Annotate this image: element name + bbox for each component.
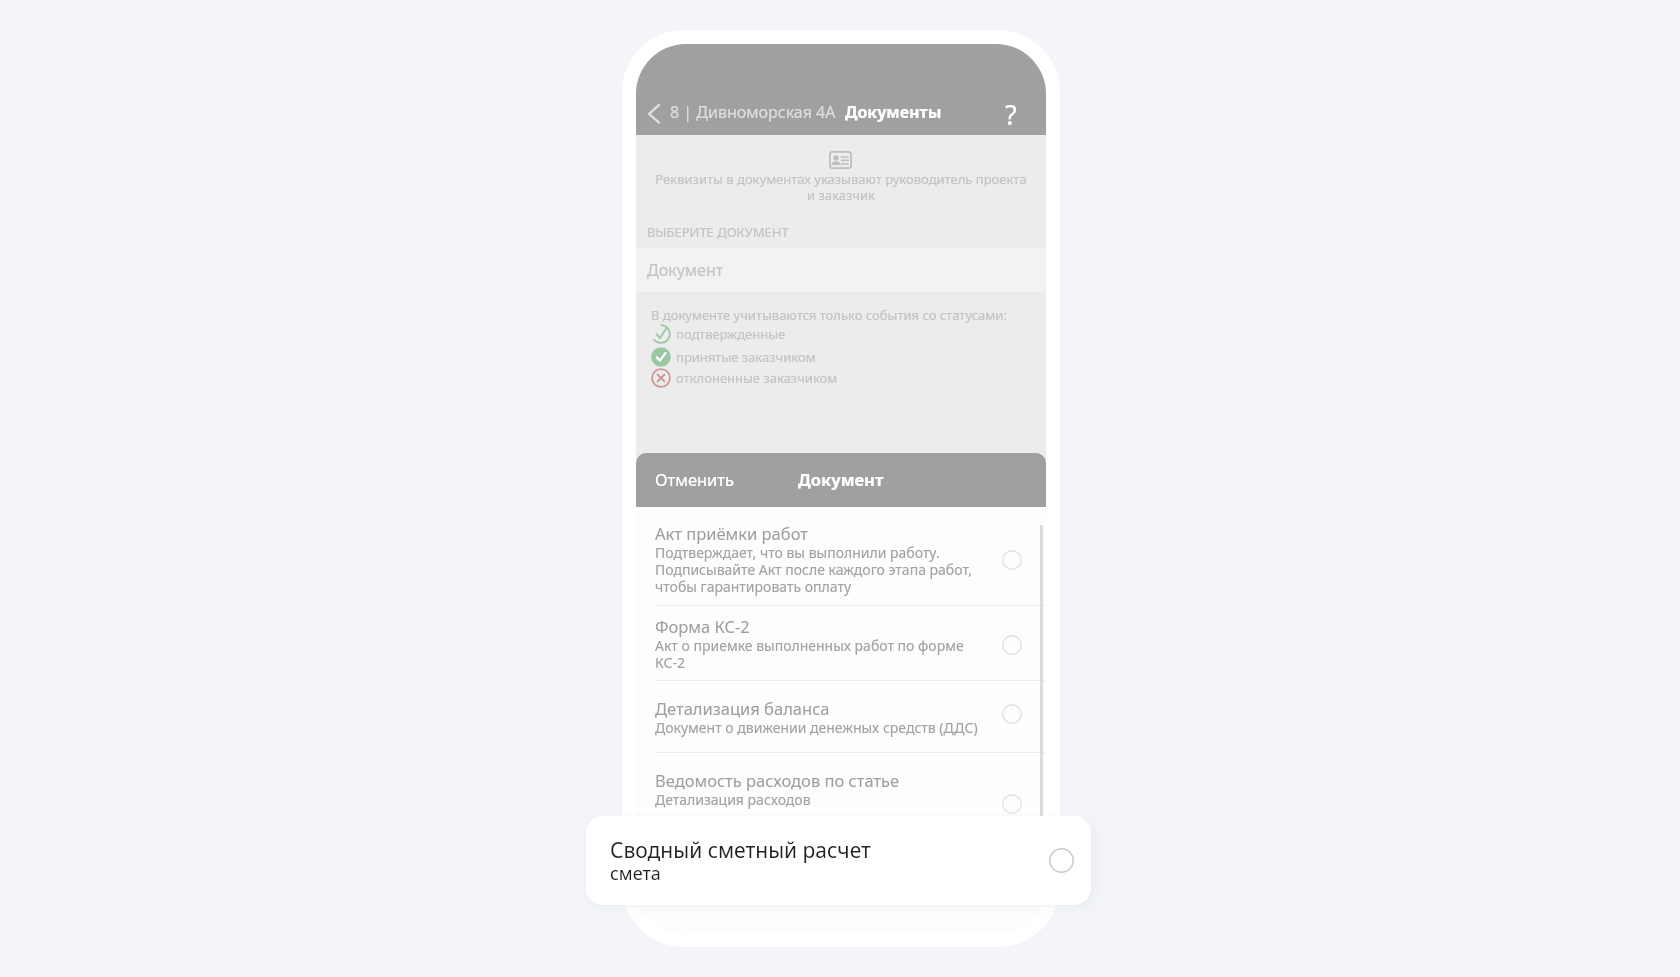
staticText: принятые заказчиком [676, 348, 816, 366]
button[interactable]: Документ [788, 462, 894, 496]
staticText: Реквизиты в документах указывают руковод… [652, 170, 1030, 203]
staticText: Документ [647, 259, 724, 281]
staticText: Детализация расходов [655, 790, 985, 809]
button[interactable]: Форма КС-2 [636, 606, 1046, 680]
button[interactable]: Сводный сметный расчет [586, 816, 1091, 905]
button[interactable]: Детализация баланса [636, 681, 1046, 752]
button[interactable]: Help [996, 96, 1026, 126]
staticText: Отменить [655, 468, 735, 490]
button[interactable]: Акт приёмки работ [636, 507, 1046, 605]
button[interactable]: Back [644, 100, 668, 124]
staticText: Ведомость расходов по статье [655, 769, 900, 791]
staticText: В документе учитываются только события с… [651, 306, 1007, 324]
staticText: отклоненные заказчиком [676, 369, 838, 387]
staticText: Документ [798, 468, 884, 490]
staticText: Подтверждает, что вы выполнили работу. П… [655, 543, 985, 596]
staticText: Детализация баланса [655, 697, 830, 719]
staticText: смета [610, 861, 661, 886]
staticText: подтвержденные [676, 325, 786, 343]
button[interactable]: Отменить [645, 462, 745, 496]
button[interactable]: Ведомость расходов по статье [636, 753, 1046, 827]
staticText: Документ о движении денежных средств (ДД… [655, 718, 985, 737]
staticText: Форма КС-2 [655, 615, 750, 637]
staticText: Акт приёмки работ [655, 522, 808, 544]
staticText: Акт о приемке выполненных работ по форме… [655, 636, 985, 672]
staticText: 8 | Дивноморская 4А [670, 101, 836, 123]
staticText: ? [1005, 96, 1017, 126]
staticText: Сводный сметный расчет [610, 836, 871, 865]
staticText: ВЫБЕРИТЕ ДОКУМЕНТ [647, 223, 789, 241]
button[interactable]: Документ [636, 248, 1046, 292]
staticText: Документы [845, 101, 942, 123]
